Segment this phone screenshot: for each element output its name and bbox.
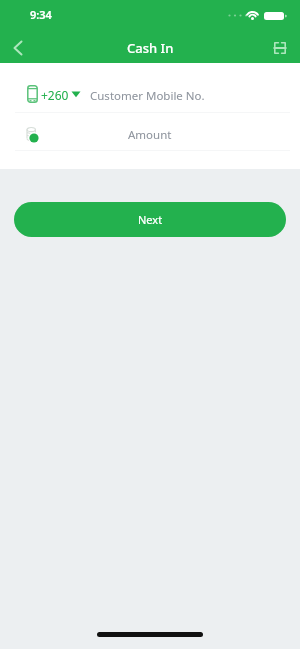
staticText: 9:34 bbox=[30, 7, 52, 22]
staticText: +260 bbox=[41, 87, 69, 103]
staticText: Cash In bbox=[127, 39, 174, 57]
button[interactable]: +260 bbox=[0, 63, 300, 112]
button[interactable]: Amount bbox=[0, 113, 300, 150]
button[interactable] bbox=[2, 32, 34, 63]
staticText: Customer Mobile No. bbox=[90, 88, 205, 104]
staticText: Next bbox=[138, 212, 163, 227]
staticText: Amount bbox=[128, 127, 172, 143]
button[interactable] bbox=[264, 32, 296, 63]
button[interactable]: Next bbox=[14, 202, 286, 237]
